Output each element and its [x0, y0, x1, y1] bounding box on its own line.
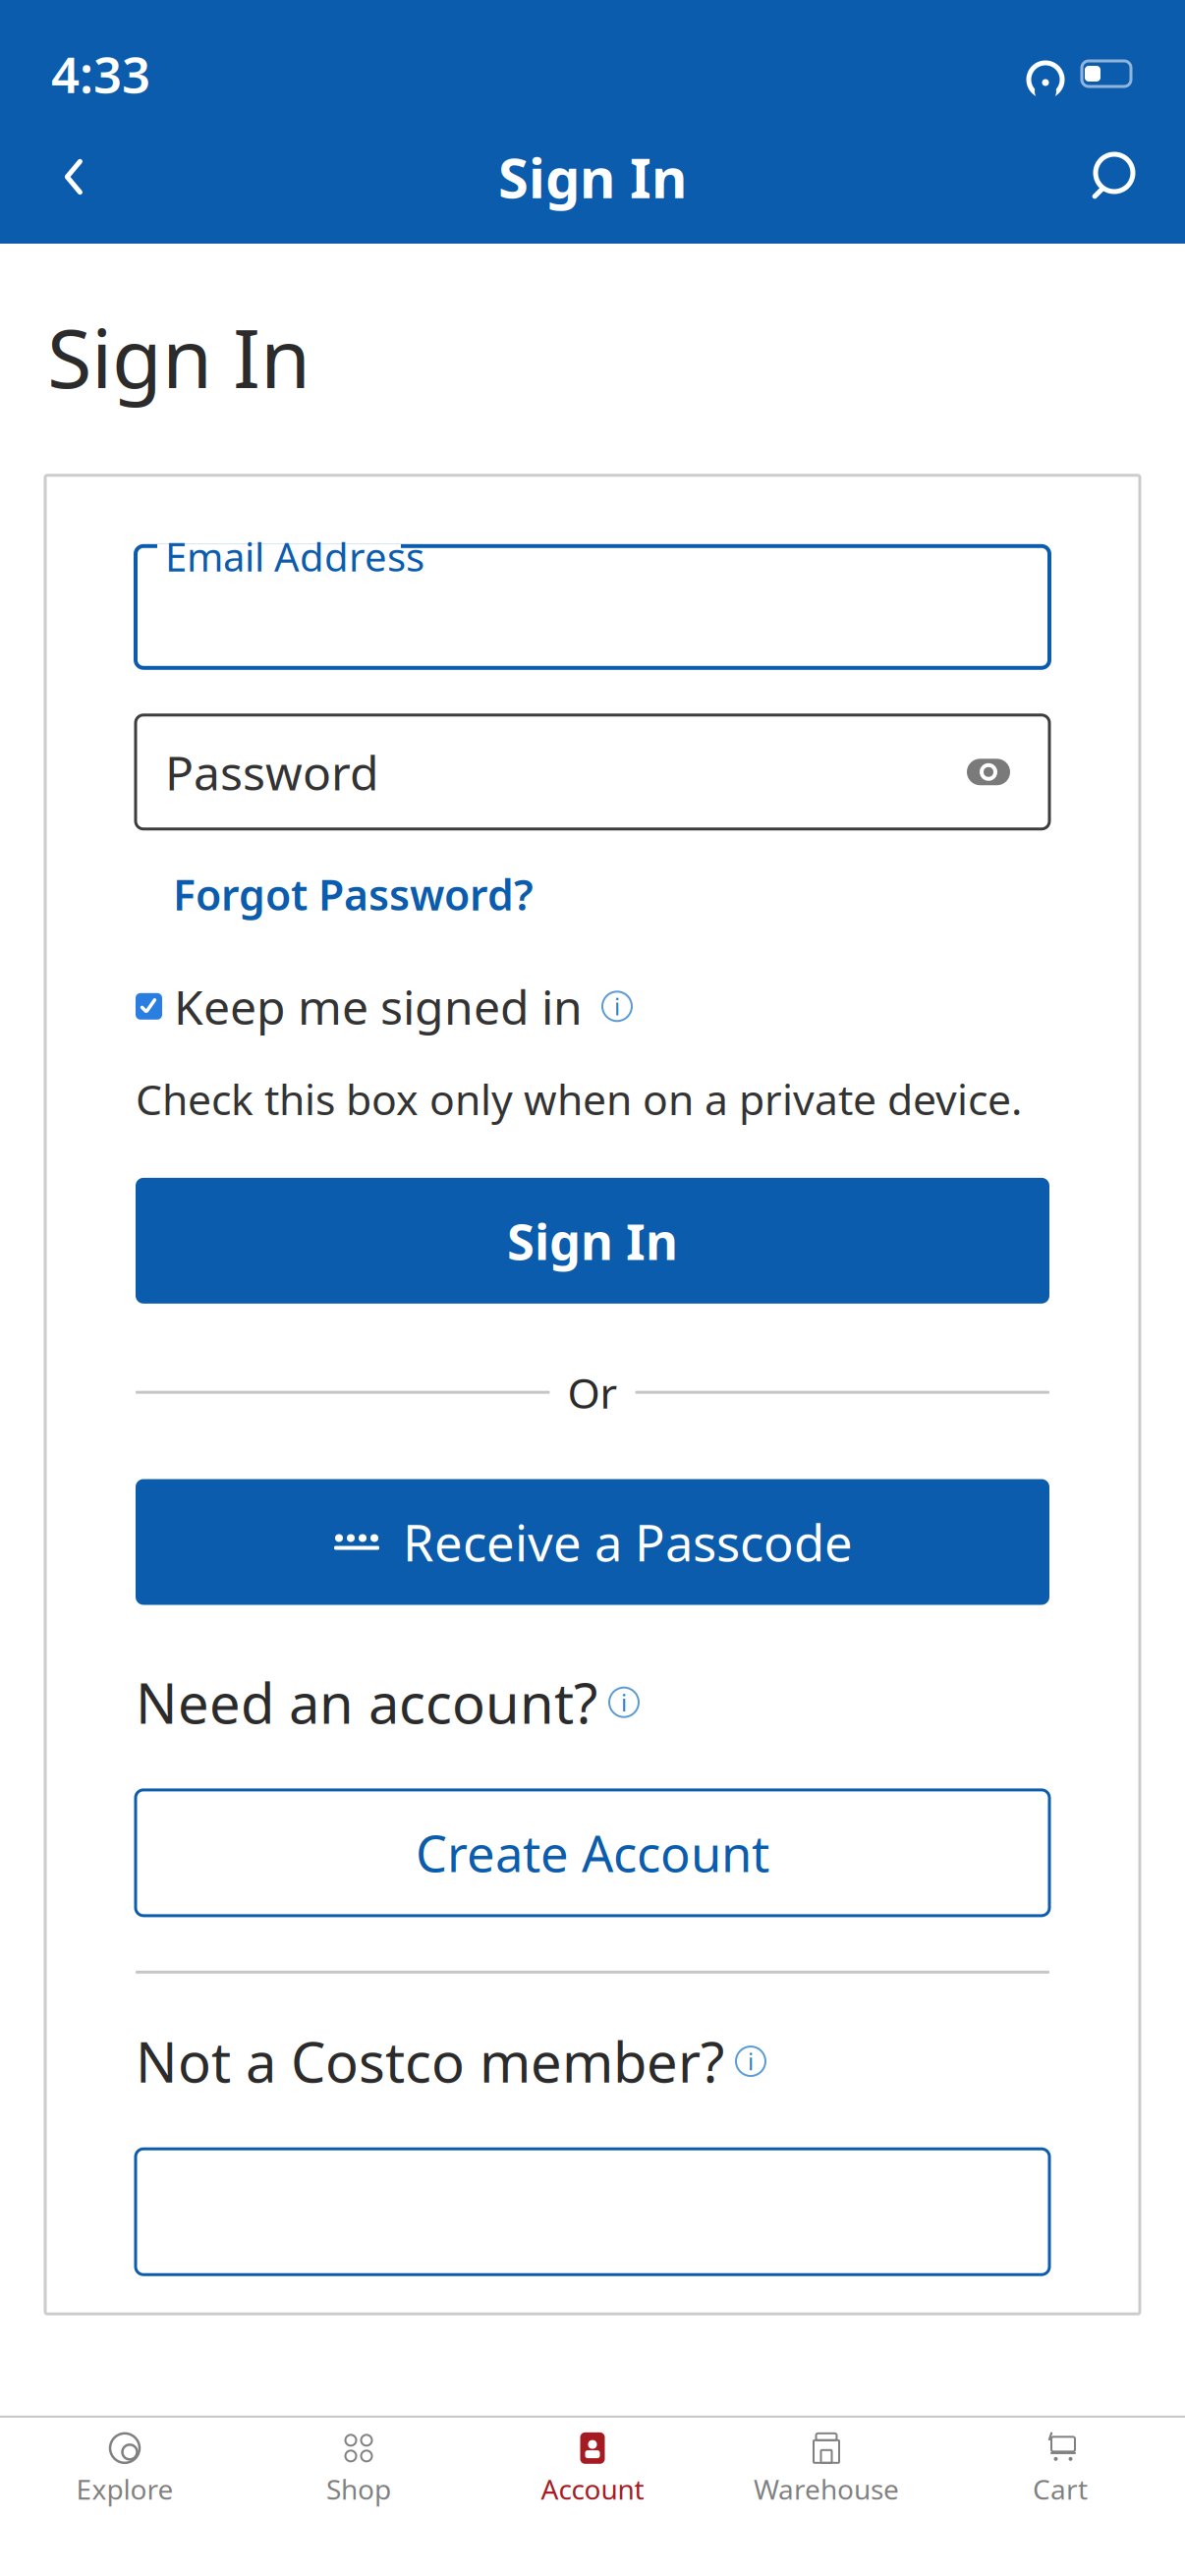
- button[interactable]: Warehouse: [709, 2418, 943, 2517]
- staticText: Create Account: [416, 1820, 769, 1886]
- button[interactable]: Keep me signed in: [136, 975, 632, 1038]
- button[interactable]: Back: [29, 138, 118, 216]
- button[interactable]: [136, 2149, 1049, 2275]
- staticText: Receive a Passcode: [403, 1509, 853, 1575]
- staticText: Keep me signed in: [174, 975, 583, 1038]
- staticText: Email Address: [165, 530, 424, 582]
- button[interactable]: Sign In: [136, 1178, 1049, 1304]
- staticText: i: [614, 991, 620, 1022]
- button[interactable]: Create Account: [136, 1790, 1049, 1916]
- staticText: Cart: [1033, 2471, 1088, 2507]
- button[interactable]: Cart: [943, 2418, 1177, 2517]
- staticText: Sign In: [498, 140, 687, 213]
- staticText: 4:33: [51, 41, 150, 107]
- button[interactable]: More info about accounts: [609, 1688, 639, 1717]
- staticText: Need an account?: [136, 1666, 597, 1739]
- button[interactable]: Search: [1067, 138, 1156, 216]
- staticText: Warehouse: [754, 2471, 899, 2507]
- button[interactable]: Forgot Password?: [173, 857, 534, 932]
- staticText: i: [621, 1687, 627, 1718]
- staticText: Not a Costco member?: [136, 2025, 724, 2098]
- button[interactable]: Receive a Passcode: [136, 1479, 1049, 1605]
- staticText: Check this box only when on a private de…: [136, 1071, 1022, 1127]
- staticText: Sign In: [47, 303, 310, 410]
- button[interactable]: More info about membership: [736, 2047, 765, 2076]
- button[interactable]: Explore: [8, 2418, 242, 2517]
- staticText: Explore: [76, 2471, 173, 2507]
- button[interactable]: Show password: [957, 741, 1020, 803]
- button[interactable]: Account: [476, 2418, 709, 2517]
- staticText: Shop: [326, 2471, 391, 2507]
- staticText: i: [748, 2046, 754, 2077]
- staticText: Account: [541, 2471, 644, 2507]
- button[interactable]: Shop: [242, 2418, 476, 2517]
- staticText: Sign In: [507, 1208, 678, 1274]
- staticText: Password: [165, 741, 379, 803]
- staticText: Or: [567, 1364, 618, 1420]
- staticText: Forgot Password?: [173, 866, 534, 922]
